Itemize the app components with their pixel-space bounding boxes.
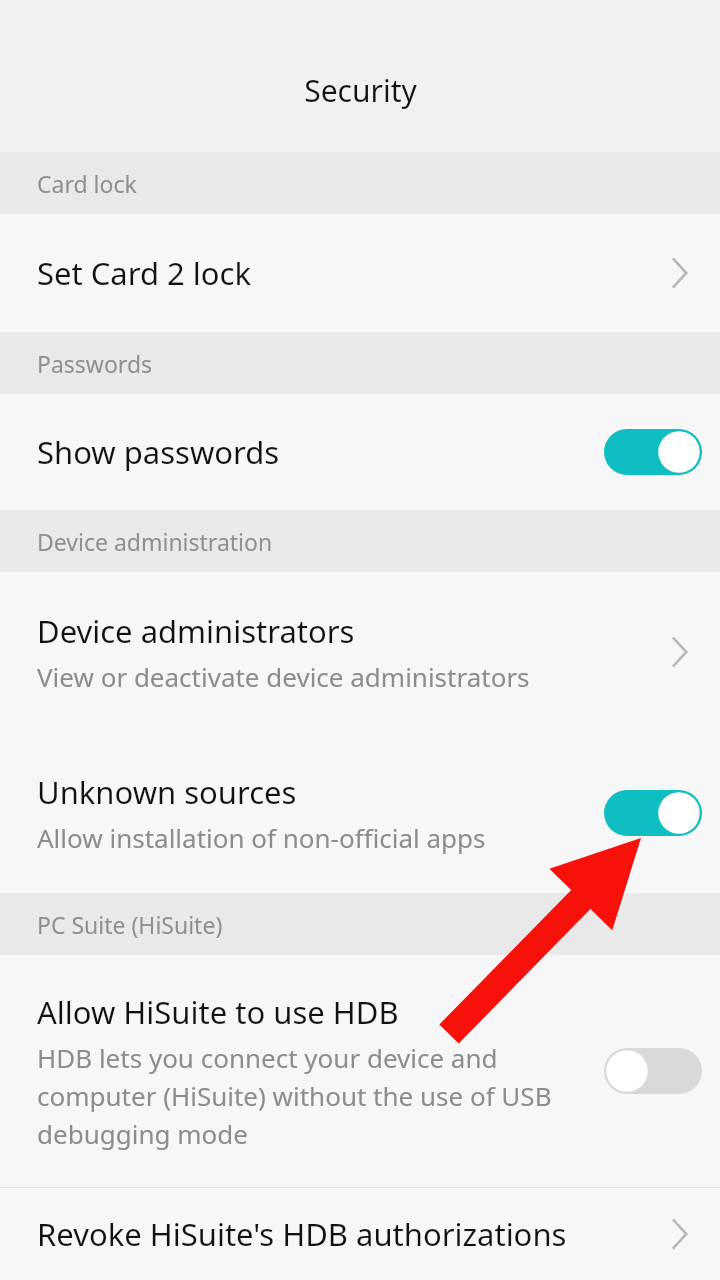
button[interactable]: Allow HiSuite to use HDB	[0, 955, 720, 1187]
other: Revoke HiSuite's HDB authorizations	[658, 1212, 702, 1256]
button[interactable]: Show passwords toggle, on	[604, 428, 702, 476]
other: Device administrators	[658, 630, 702, 674]
button[interactable]: Allow HiSuite to use HDB toggle, off	[604, 1047, 702, 1095]
staticText: Device administrators	[37, 610, 355, 652]
button[interactable]: Unknown sources	[0, 732, 720, 893]
staticText: View or deactivate device administrators	[37, 659, 530, 694]
staticText: Device administration	[37, 526, 273, 557]
button[interactable]: Show passwords	[0, 394, 720, 510]
staticText: Passwords	[37, 348, 153, 379]
staticText: Show passwords	[37, 431, 280, 473]
staticText: Revoke HiSuite's HDB authorizations	[37, 1213, 567, 1255]
staticText: Set Card 2 lock	[37, 252, 252, 294]
staticText: Unknown sources	[37, 771, 297, 813]
button[interactable]: Unknown sources toggle, on	[604, 789, 702, 837]
staticText: Allow installation of non-official apps	[37, 820, 486, 855]
staticText: PC Suite (HiSuite)	[37, 909, 223, 940]
staticText: Security	[304, 70, 417, 111]
staticText: HDB lets you connect your device and com…	[37, 1040, 594, 1151]
staticText: Card lock	[37, 168, 137, 199]
button[interactable]: Set Card 2 lock	[0, 214, 720, 332]
button[interactable]: Device administrators	[0, 572, 720, 732]
staticText: Allow HiSuite to use HDB	[37, 991, 399, 1033]
other: Set Card 2 lock	[658, 251, 702, 295]
button[interactable]: Revoke HiSuite's HDB authorizations	[0, 1188, 720, 1280]
